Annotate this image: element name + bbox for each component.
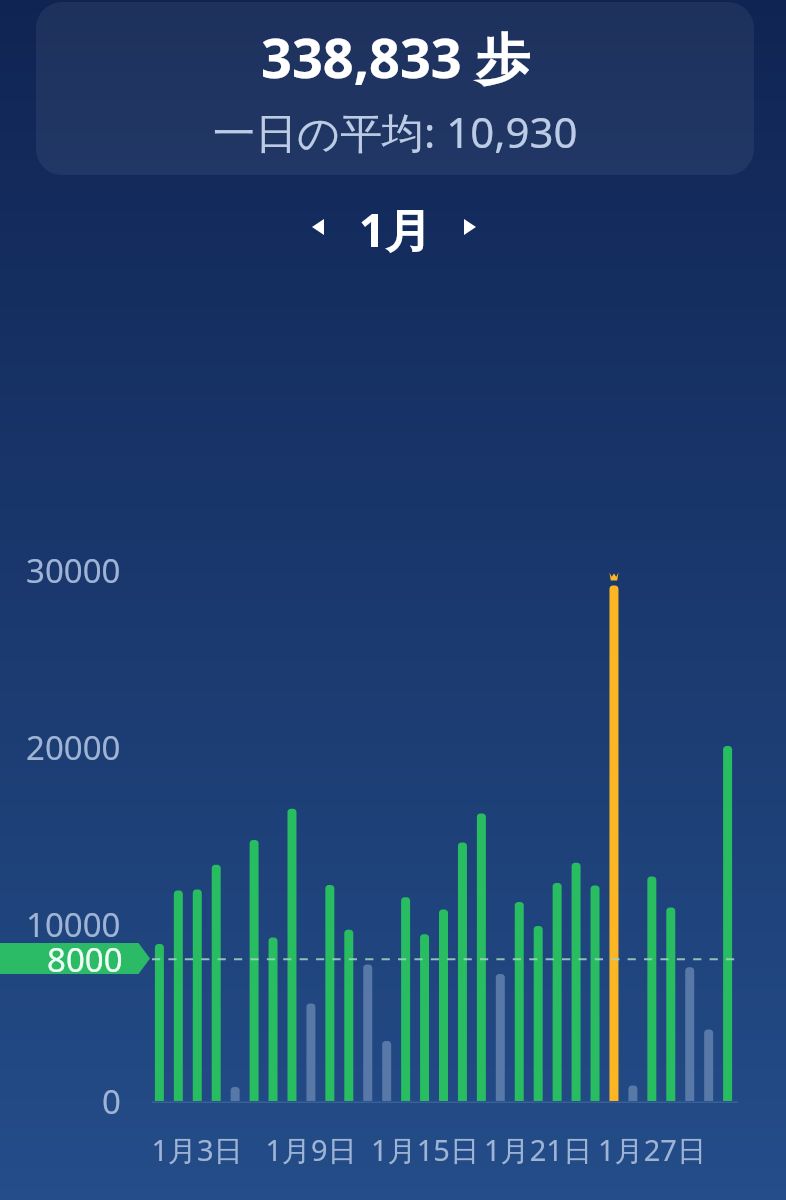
staticText: 10000 (26, 902, 121, 946)
staticText: 一日の平均: 10,930 (213, 103, 578, 160)
staticText: 30000 (26, 548, 121, 592)
button[interactable] (0, 943, 150, 974)
staticText: 0 (102, 1079, 121, 1123)
button[interactable]: Next month (446, 203, 494, 251)
staticText: 1月15日 (371, 1130, 479, 1170)
staticText: 20000 (26, 725, 121, 769)
staticText: 8000 (47, 937, 123, 982)
staticText: 1月27日 (598, 1130, 706, 1170)
staticText: 1月3日 (151, 1130, 243, 1170)
staticText: 1月21日 (484, 1130, 592, 1170)
button[interactable]: 338,833 歩 (36, 2, 754, 175)
staticText: 1月9日 (265, 1130, 357, 1170)
button[interactable]: Previous month (294, 203, 342, 251)
staticText: 1月 (359, 198, 432, 254)
other: Daily step chart for January (0, 0, 786, 1200)
button[interactable]: 1月 (335, 198, 455, 254)
staticText: 338,833 歩 (261, 20, 530, 94)
